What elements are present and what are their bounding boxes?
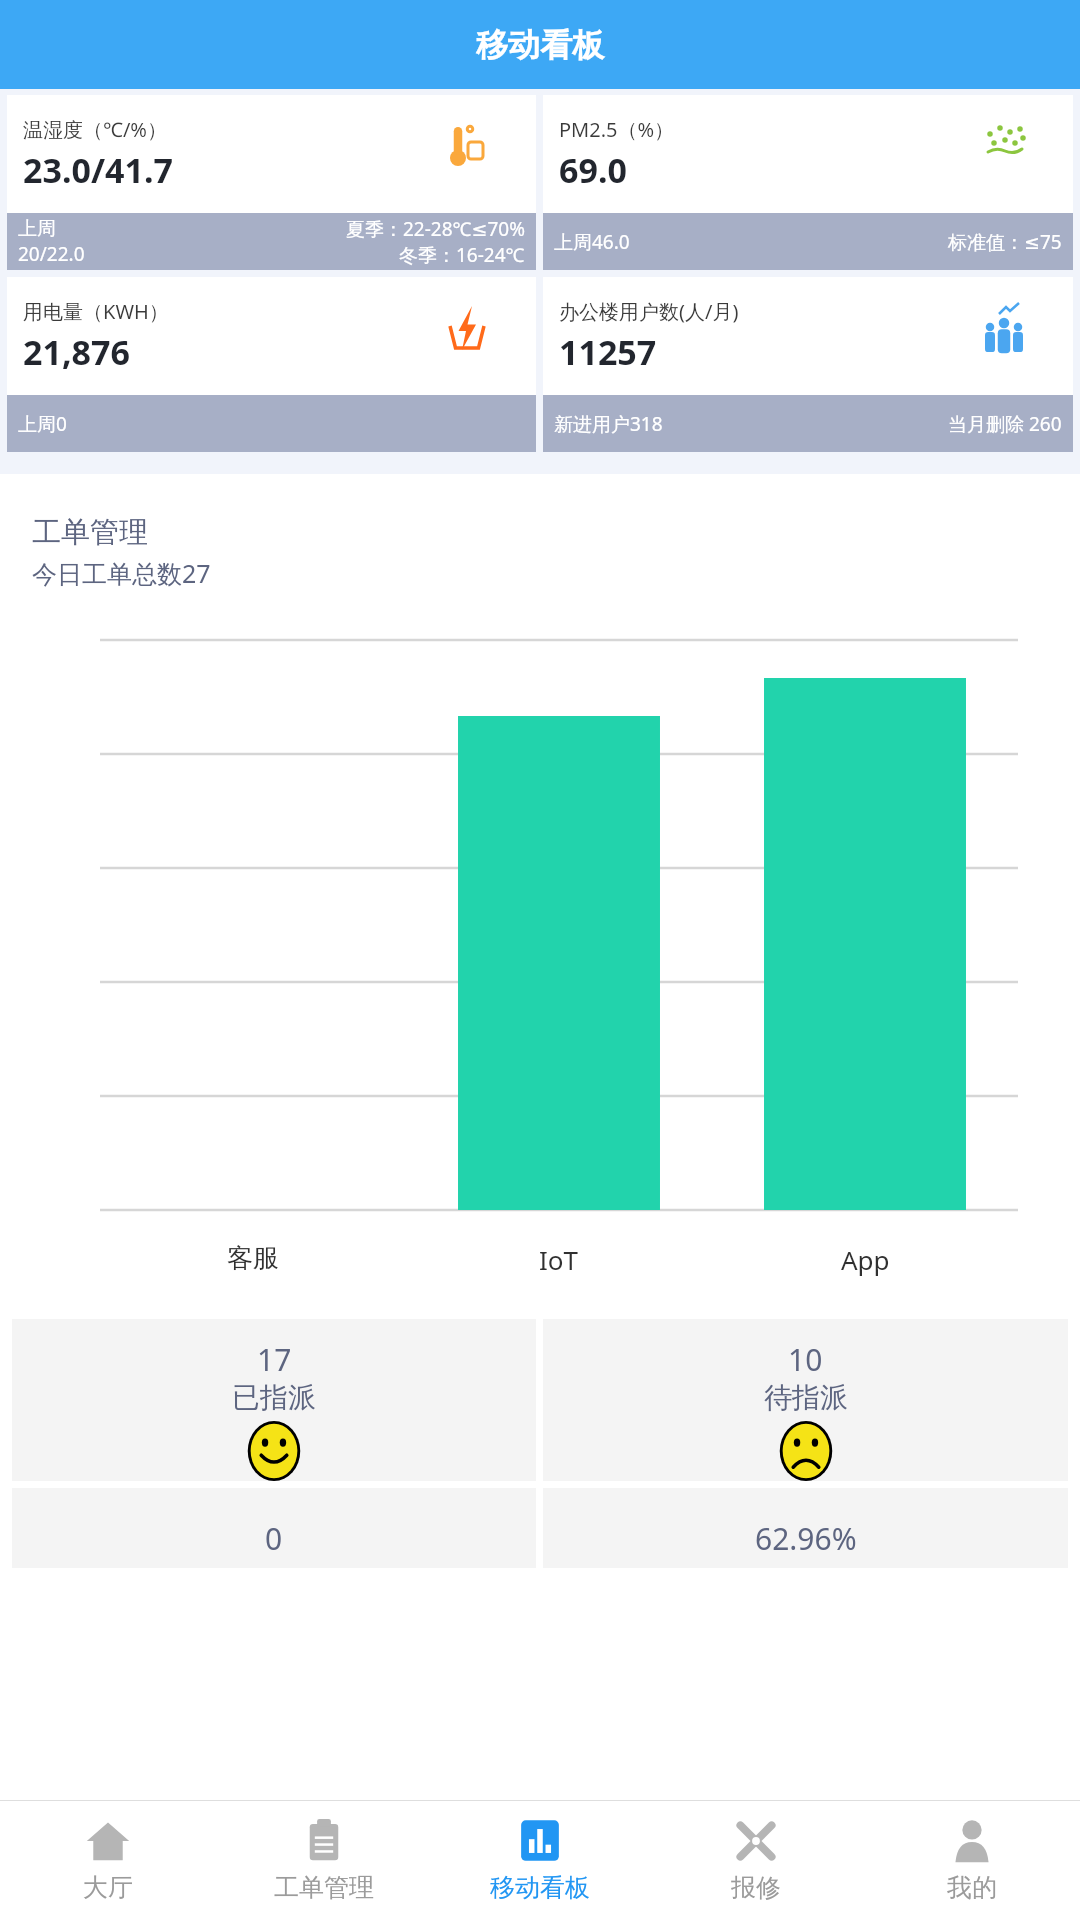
staticText: 温湿度（℃/%） bbox=[23, 116, 167, 143]
button[interactable]: 62.96% bbox=[543, 1488, 1068, 1568]
staticText: 17 bbox=[257, 1339, 292, 1380]
staticText: 我的 bbox=[947, 1872, 997, 1903]
staticText: 新进用户318 bbox=[554, 411, 663, 437]
staticText: 上周0 bbox=[18, 411, 67, 437]
button[interactable]: 大厅 bbox=[0, 1801, 216, 1920]
staticText: 21,876 bbox=[23, 329, 130, 375]
other: 用户数 bbox=[979, 303, 1029, 353]
staticText: 11257 bbox=[559, 329, 657, 375]
staticText: IoT bbox=[539, 1242, 579, 1277]
other: 我的 bbox=[949, 1818, 995, 1864]
button[interactable]: 0 bbox=[12, 1488, 536, 1568]
button[interactable]: 移动看板 bbox=[432, 1801, 648, 1920]
staticText: 工单管理 bbox=[274, 1872, 374, 1903]
staticText: PM2.5（%） bbox=[559, 116, 675, 143]
staticText: 移动看板 bbox=[476, 25, 604, 65]
button[interactable]: PM2.5（%） bbox=[543, 95, 1073, 270]
button[interactable]: 报修 bbox=[648, 1801, 864, 1920]
other: PM2.5 bbox=[979, 121, 1029, 171]
staticText: 0 bbox=[265, 1518, 283, 1559]
button[interactable]: 17 bbox=[12, 1319, 536, 1481]
staticText: 标准值：≤75 bbox=[948, 229, 1062, 255]
staticText: 已指派 bbox=[232, 1380, 316, 1415]
staticText: 69.0 bbox=[559, 147, 627, 193]
button[interactable]: 我的 bbox=[864, 1801, 1080, 1920]
button[interactable]: 用电量（KWH） bbox=[7, 277, 536, 452]
staticText: 冬季：16-24℃ bbox=[399, 242, 525, 268]
staticText: 客服 bbox=[227, 1242, 279, 1275]
staticText: 10 bbox=[788, 1339, 823, 1380]
staticText: 工单管理 bbox=[32, 514, 148, 551]
other: 大厅 bbox=[85, 1818, 131, 1864]
staticText: 今日工单总数27 bbox=[32, 556, 211, 590]
staticText: 办公楼用户数(人/月) bbox=[559, 298, 739, 325]
staticText: App bbox=[841, 1242, 890, 1277]
other: 温湿度 bbox=[442, 121, 492, 171]
button[interactable]: 办公楼用户数(人/月) bbox=[543, 277, 1073, 452]
other: 移动看板 bbox=[517, 1818, 563, 1864]
staticText: 当月删除 260 bbox=[948, 411, 1062, 437]
staticText: 待指派 bbox=[764, 1380, 848, 1415]
staticText: 20/22.0 bbox=[18, 241, 85, 267]
staticText: 夏季：22-28℃≤70% bbox=[346, 216, 525, 242]
staticText: 23.0/41.7 bbox=[23, 147, 173, 193]
staticText: 报修 bbox=[731, 1872, 781, 1903]
staticText: 上周 bbox=[18, 217, 56, 241]
staticText: 移动看板 bbox=[490, 1872, 590, 1903]
staticText: 大厅 bbox=[83, 1872, 133, 1903]
button[interactable]: 工单管理 bbox=[216, 1801, 432, 1920]
other: 工单管理 bbox=[301, 1818, 347, 1864]
button[interactable]: 温湿度（℃/%） bbox=[7, 95, 536, 270]
staticText: 上周46.0 bbox=[554, 229, 630, 255]
other: 用电量 bbox=[442, 303, 492, 353]
button[interactable]: 10 bbox=[543, 1319, 1068, 1481]
staticText: 用电量（KWH） bbox=[23, 298, 169, 325]
staticText: 62.96% bbox=[755, 1518, 857, 1559]
other: 报修 bbox=[733, 1818, 779, 1864]
